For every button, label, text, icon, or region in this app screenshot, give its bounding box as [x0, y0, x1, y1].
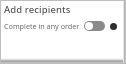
button[interactable] [84, 21, 105, 31]
staticText: Add recipients [4, 3, 71, 16]
button[interactable]: More info [109, 22, 118, 31]
staticText: Complete in any order [4, 21, 80, 31]
